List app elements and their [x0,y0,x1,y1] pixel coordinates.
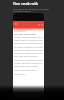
staticText: View emails with [13,2,39,6]
staticText: Thanks again, great work. [14,69,37,72]
staticText: confirm the vendor contract and [14,62,43,65]
staticText: Quarterly review notes [14,33,36,36]
staticText: activation by twelve percent. The [14,52,43,55]
staticText: today. Below is a summary of what [14,39,43,42]
staticText: The revenue numbers look strong [14,46,43,49]
staticText: Hi team, thanks for joining the call [14,36,43,39]
staticText: we agreed on and the follow ups. [14,42,43,45]
staticText: Action items: finalise the roadmap, [14,59,43,62]
staticText: share design files by Friday. [14,65,38,68]
staticText: case study ships next week. [14,55,38,58]
staticText: and the new onboarding flow grew [14,49,43,52]
button[interactable]: Back [13,21,44,28]
staticText: Best regards, [14,73,26,76]
staticText: the app and the web. No need to switch a… [13,7,51,13]
